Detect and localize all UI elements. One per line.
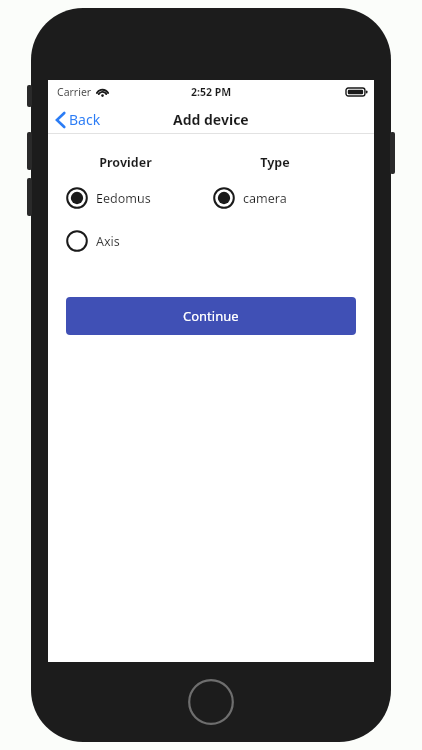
button[interactable]: Eedomus (66, 185, 159, 211)
staticText: Type (260, 154, 290, 171)
staticText: camera (243, 190, 287, 207)
staticText: Add device (173, 110, 249, 129)
button[interactable]: Continue (66, 297, 356, 335)
button[interactable]: Axis (66, 228, 128, 254)
button[interactable]: Home (188, 679, 234, 725)
staticText: Provider (99, 154, 152, 171)
staticText: Back (69, 110, 101, 129)
button[interactable]: Back (48, 106, 111, 133)
staticText: Continue (183, 307, 239, 325)
staticText: Eedomus (96, 190, 151, 207)
staticText: Axis (96, 233, 120, 250)
staticText: Carrier (57, 85, 92, 99)
button[interactable]: camera (213, 185, 295, 211)
staticText: 2:52 PM (191, 85, 232, 99)
